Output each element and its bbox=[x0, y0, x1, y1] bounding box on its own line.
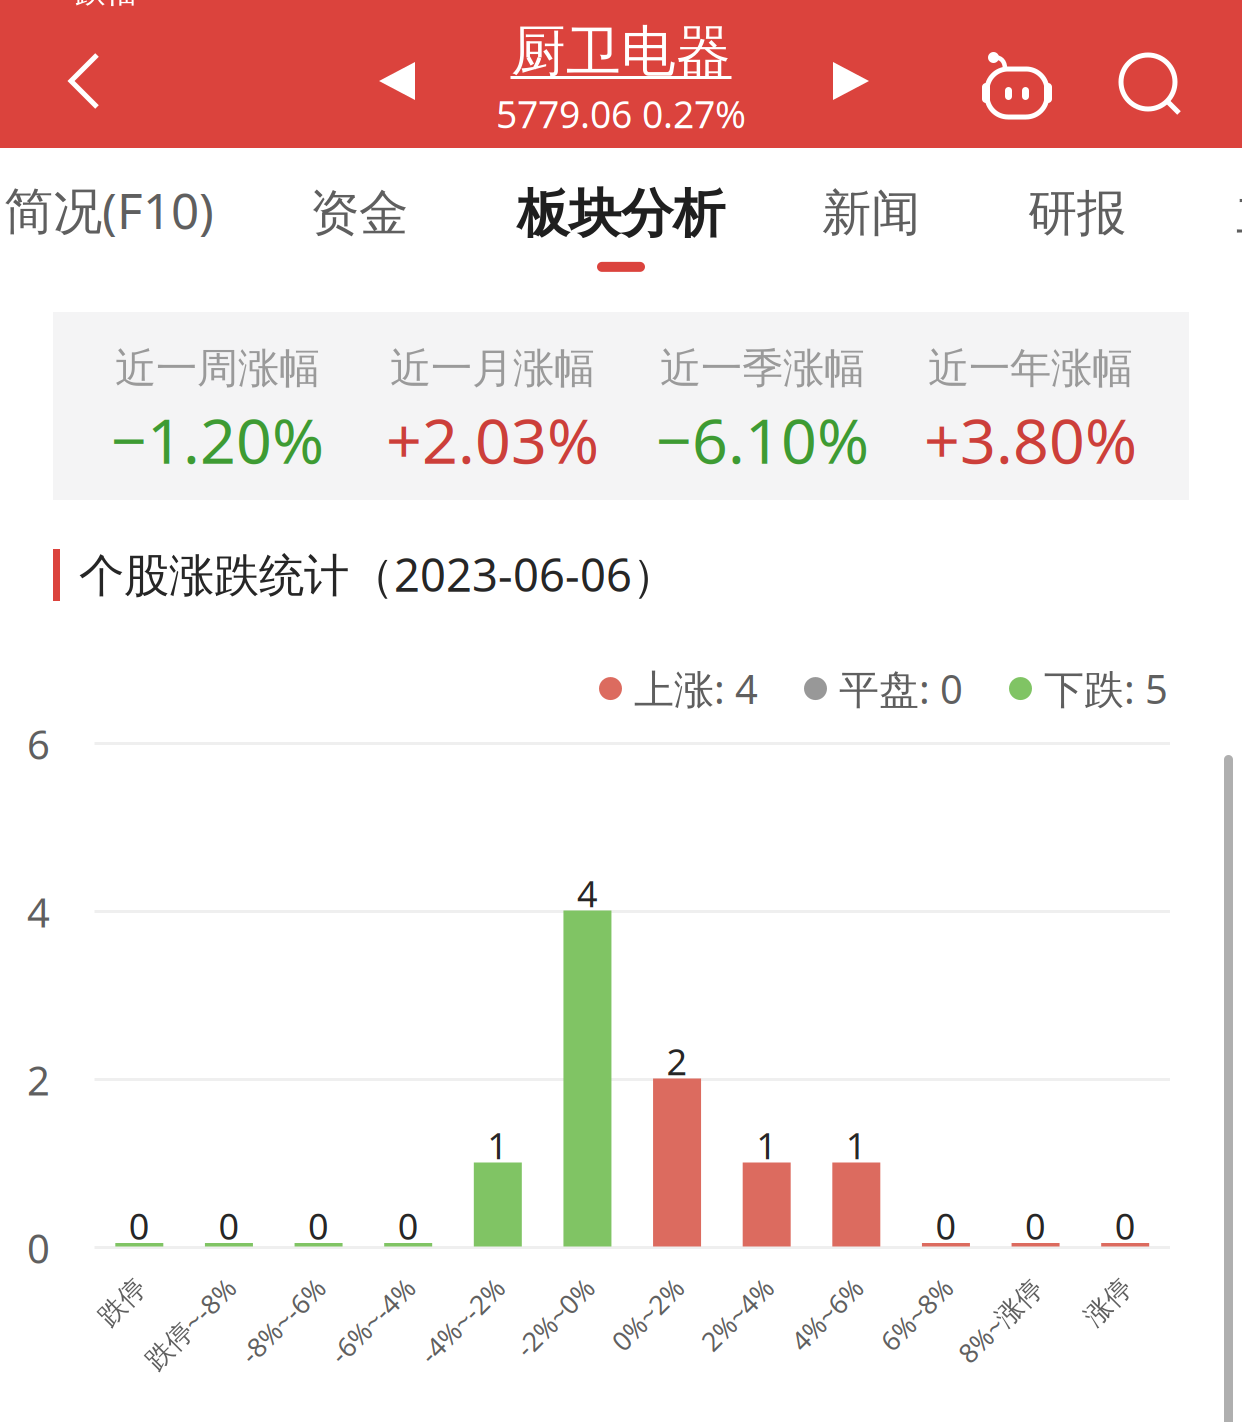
staticText: 板块分析 bbox=[517, 182, 725, 246]
staticText: +3.80% bbox=[924, 398, 1137, 481]
button[interactable]: 板块分析 bbox=[491, 156, 751, 272]
button[interactable]: 资金 bbox=[284, 157, 434, 270]
staticText: 0 bbox=[1115, 1202, 1136, 1250]
staticText: 8%~涨停 bbox=[947, 1303, 1053, 1338]
button[interactable]: Assistant bbox=[975, 49, 1059, 125]
staticText: −1.20% bbox=[111, 398, 324, 481]
staticText: 简况(F10) bbox=[4, 177, 214, 242]
staticText: 6%~8% bbox=[872, 1297, 961, 1332]
staticText: 2 bbox=[27, 1053, 50, 1107]
staticText: 新闻 bbox=[822, 183, 920, 244]
staticText: -2%~0% bbox=[506, 1300, 604, 1335]
button[interactable]: Search bbox=[1121, 55, 1183, 117]
staticText: 厨卫电器 bbox=[511, 18, 731, 85]
staticText: 近一年涨幅 bbox=[928, 343, 1133, 394]
staticText: 0 bbox=[129, 1202, 150, 1250]
staticText: -8%~-6% bbox=[229, 1303, 336, 1338]
staticText: 下跌: 5 bbox=[1044, 662, 1168, 715]
button[interactable]: Previous sector bbox=[362, 61, 432, 101]
staticText: 0%~2% bbox=[603, 1297, 692, 1332]
staticText: 4%~6% bbox=[782, 1297, 871, 1332]
staticText: 2%~4% bbox=[693, 1297, 782, 1332]
staticText: 0 bbox=[27, 1221, 50, 1275]
staticText: 1 bbox=[756, 1121, 777, 1169]
staticText: 平盘: 0 bbox=[839, 662, 963, 715]
staticText: 0 bbox=[218, 1202, 239, 1250]
staticText: 跌幅 bbox=[75, 0, 137, 11]
staticText: 0 bbox=[935, 1202, 956, 1250]
staticText: 跌停~-8% bbox=[133, 1306, 248, 1341]
button[interactable]: 主 bbox=[1210, 157, 1242, 270]
staticText: 研报 bbox=[1028, 183, 1126, 244]
button[interactable]: Back bbox=[44, 47, 124, 115]
staticText: -4%~-2% bbox=[408, 1303, 515, 1338]
staticText: 近一季涨幅 bbox=[660, 343, 865, 394]
staticText: 涨停 bbox=[1081, 1286, 1135, 1318]
staticText: 0 bbox=[1025, 1202, 1046, 1250]
staticText: 4 bbox=[577, 869, 598, 917]
staticText: 4 bbox=[27, 885, 50, 939]
staticText: 1 bbox=[487, 1121, 508, 1169]
staticText: 主 bbox=[1236, 183, 1242, 244]
button[interactable]: 简况(F10) bbox=[0, 151, 240, 268]
staticText: 2 bbox=[667, 1037, 688, 1085]
staticText: 资金 bbox=[310, 183, 408, 244]
staticText: 近一周涨幅 bbox=[115, 343, 320, 394]
staticText: 跌停 bbox=[95, 1286, 149, 1318]
staticText: 近一月涨幅 bbox=[390, 343, 595, 394]
staticText: 0 bbox=[308, 1202, 329, 1250]
staticText: 6 bbox=[27, 717, 50, 771]
staticText: 个股涨跌统计（2023-06-06） bbox=[79, 544, 677, 604]
staticText: +2.03% bbox=[386, 398, 599, 481]
button[interactable]: 厨卫电器 bbox=[431, 12, 811, 142]
staticText: −6.10% bbox=[656, 398, 869, 481]
staticText: 1 bbox=[846, 1121, 867, 1169]
button[interactable]: 新闻 bbox=[796, 157, 946, 270]
staticText: 上涨: 4 bbox=[634, 662, 758, 715]
staticText: 0 bbox=[398, 1202, 419, 1250]
staticText: -6%~-4% bbox=[319, 1303, 426, 1338]
staticText: 5779.06 0.27% bbox=[496, 89, 746, 139]
button[interactable]: 研报 bbox=[1002, 157, 1152, 270]
button[interactable]: Next sector bbox=[816, 61, 886, 101]
